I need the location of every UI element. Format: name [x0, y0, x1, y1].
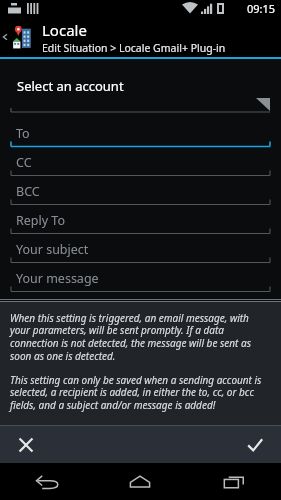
staticText: BCC	[16, 183, 40, 200]
staticText: Select an account	[17, 77, 124, 95]
staticText: When this setting is triggered, an email…	[10, 311, 271, 363]
button[interactable]: Back	[0, 17, 10, 57]
button[interactable]: To	[0, 121, 281, 150]
staticText: CC	[16, 154, 32, 171]
button[interactable]: Your subject	[0, 237, 281, 266]
button[interactable]: Home	[93, 463, 187, 500]
button[interactable]: Back	[0, 463, 93, 500]
staticText: Locale	[42, 20, 87, 40]
button[interactable]: Cancel	[0, 426, 52, 463]
button[interactable]: Select an account	[0, 69, 281, 115]
staticText: Edit Situation > Locale Gmail+ Plug-in	[42, 41, 226, 55]
staticText: To	[16, 125, 30, 142]
button[interactable]: Recent apps	[187, 463, 281, 500]
staticText: 09:15	[247, 1, 276, 16]
staticText: This setting can only be saved when a se…	[10, 373, 271, 412]
button[interactable]: Your message	[0, 266, 281, 295]
button[interactable]: Reply To	[0, 208, 281, 237]
staticText: Your message	[16, 270, 99, 287]
staticText: Reply To	[16, 212, 66, 229]
button[interactable]: Save	[229, 426, 281, 463]
button[interactable]: CC	[0, 150, 281, 179]
button[interactable]: BCC	[0, 179, 281, 208]
staticText: Your subject	[16, 241, 89, 258]
